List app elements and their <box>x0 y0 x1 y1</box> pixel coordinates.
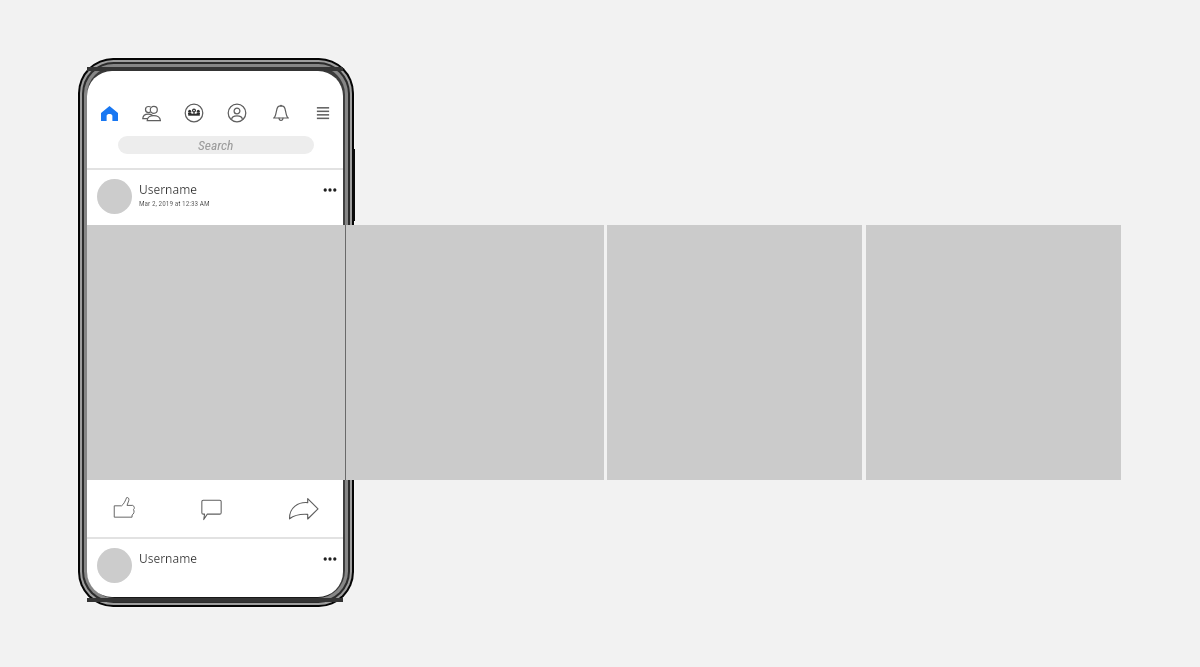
button[interactable]: Search <box>118 136 314 154</box>
button[interactable]: More options <box>317 546 343 572</box>
button[interactable]: Photo <box>87 225 604 480</box>
button[interactable]: Notifications <box>265 97 297 129</box>
button[interactable]: Groups <box>178 97 210 129</box>
staticText: Username <box>139 550 197 566</box>
button[interactable]: Username <box>87 170 343 226</box>
button[interactable]: More options <box>317 177 343 203</box>
button[interactable]: Friends <box>136 97 168 129</box>
button[interactable]: Profile <box>221 97 253 129</box>
staticText: Search <box>198 137 234 153</box>
button[interactable]: Username <box>87 539 343 595</box>
staticText: Username <box>139 181 197 197</box>
button[interactable]: Home <box>93 97 125 129</box>
button[interactable]: Like <box>100 486 148 528</box>
staticText: Mar 2, 2019 at 12:33 AM <box>139 199 210 208</box>
button[interactable]: Share <box>279 487 327 529</box>
button[interactable]: Comment <box>187 488 235 530</box>
button[interactable]: Menu <box>307 97 339 129</box>
